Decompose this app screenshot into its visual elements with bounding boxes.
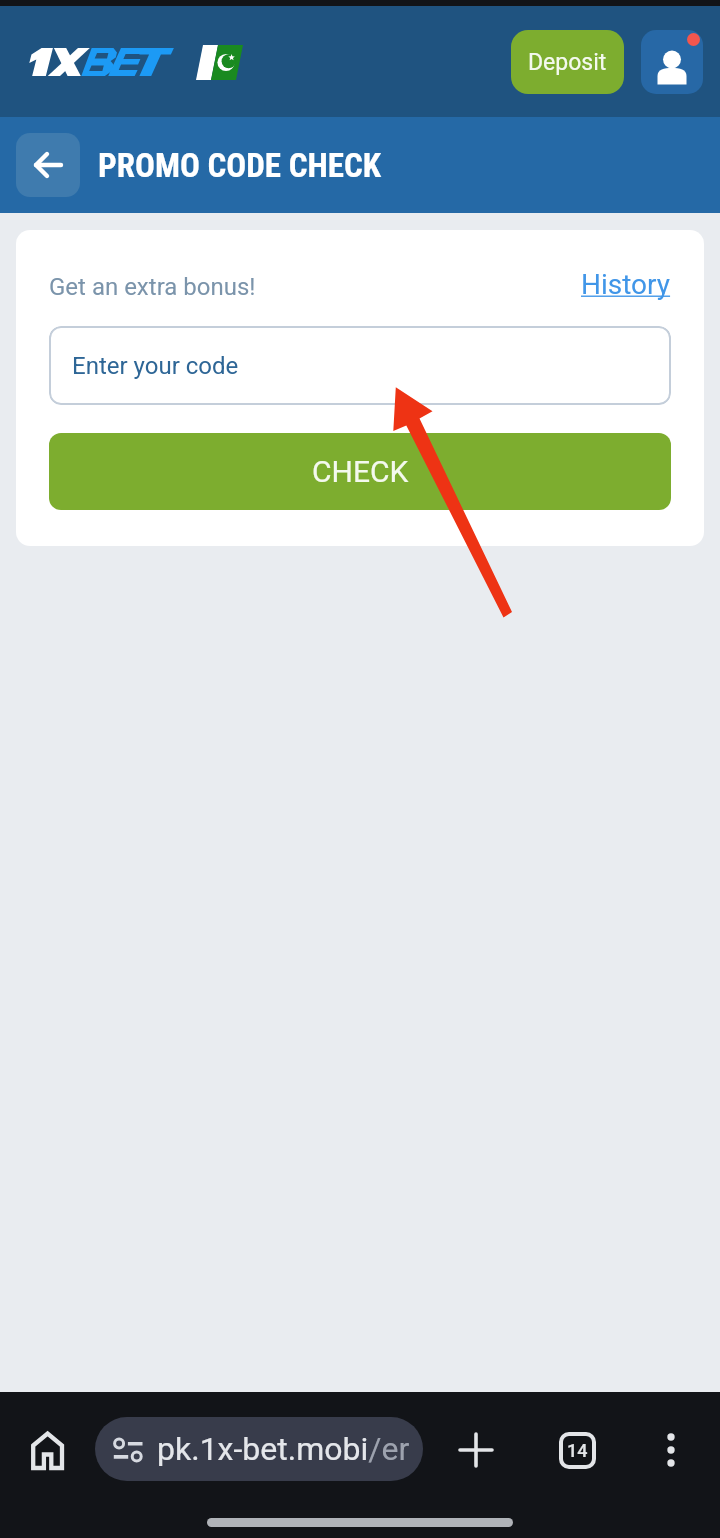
staticText: pk.1x-bet.mobi/er [157, 1430, 410, 1468]
staticText: Get an extra bonus! [49, 273, 256, 301]
button[interactable]: Account [641, 30, 703, 94]
button[interactable]: More options [639, 1418, 703, 1482]
button[interactable]: Deposit [511, 30, 624, 94]
staticText: CHECK [312, 454, 409, 489]
button[interactable]: Enter your code [49, 326, 671, 405]
staticText: PROMO CODE CHECK [98, 146, 381, 185]
staticText: 14 [567, 1440, 588, 1461]
staticText: Enter your code [72, 352, 239, 380]
button[interactable]: pk.1x-bet.mobi/er [95, 1417, 423, 1481]
button[interactable]: New tab [444, 1418, 508, 1482]
button[interactable]: 1xBet home [24, 36, 248, 88]
button[interactable]: Home [16, 1418, 80, 1482]
button[interactable]: CHECK [49, 433, 671, 510]
staticText: Deposit [528, 49, 607, 76]
button[interactable]: Tabs [545, 1418, 609, 1482]
button[interactable]: Back [16, 133, 80, 197]
button[interactable]: History [579, 266, 673, 303]
staticText: History [581, 268, 671, 301]
